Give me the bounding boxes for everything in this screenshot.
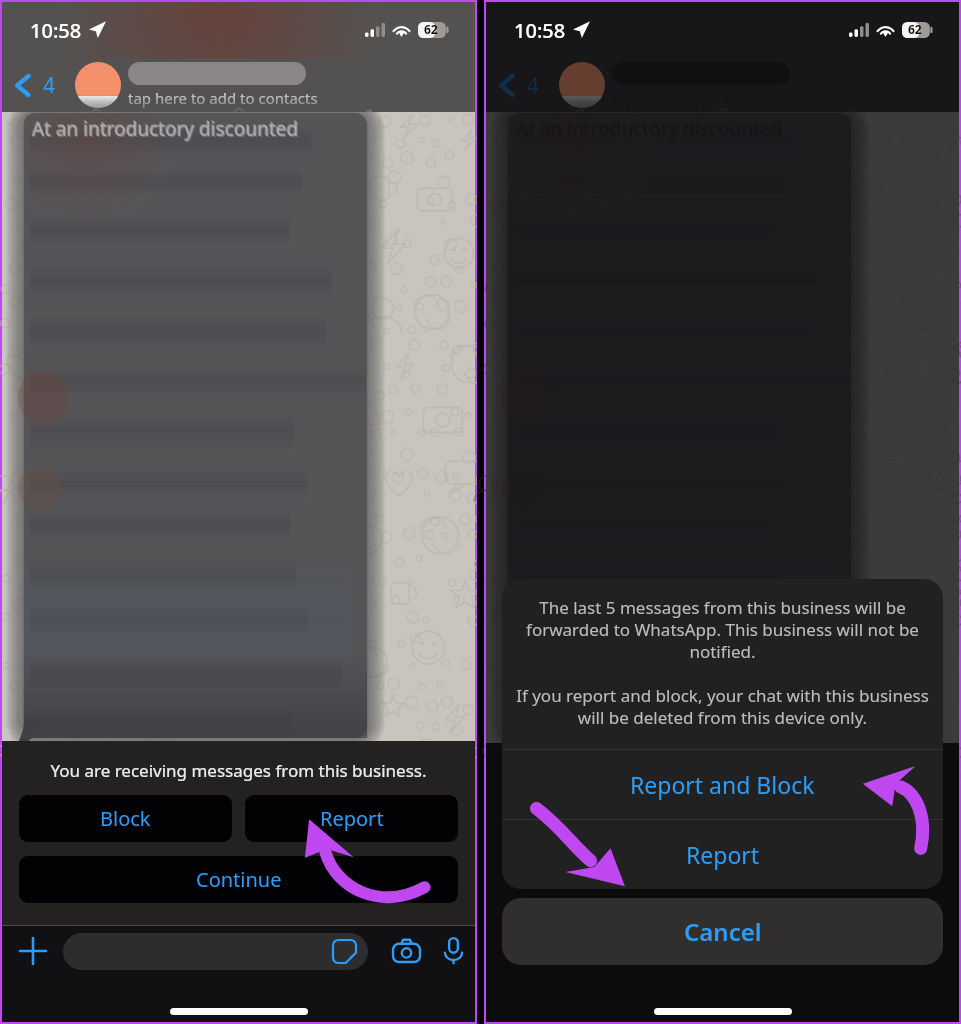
staticText: Continue: [196, 866, 282, 893]
button[interactable]: Back, 4 unread: [10, 65, 60, 106]
button[interactable]: tap here to add to contacts: [128, 62, 461, 108]
staticText: Block: [100, 805, 151, 832]
staticText: 62: [424, 21, 438, 37]
button[interactable]: Back, 4 unread: [494, 65, 544, 106]
staticText: 4: [43, 71, 56, 100]
button[interactable]: Report: [245, 795, 458, 842]
button[interactable]: Cancel: [502, 898, 943, 965]
button[interactable]: [63, 933, 368, 970]
button[interactable]: Continue: [19, 856, 458, 903]
button[interactable]: Report and Block: [502, 750, 943, 819]
staticText: 10:58: [514, 17, 566, 44]
staticText: Cancel: [684, 915, 762, 948]
button[interactable]: Report: [502, 820, 943, 889]
button[interactable]: Profile photo: [559, 62, 605, 108]
staticText: At an introductory discounted: [32, 116, 299, 142]
staticText: tap here to add to contacts: [128, 88, 318, 108]
staticText: 62: [908, 21, 922, 37]
staticText: 10:58: [30, 17, 82, 44]
button[interactable]: tap here to add to contacts: [612, 62, 945, 108]
staticText: At an introductory discounted: [33, 117, 300, 143]
staticText: Report: [686, 839, 760, 870]
staticText: You are receiving messages from this bus…: [19, 759, 458, 782]
staticText: Report and Block: [630, 769, 815, 800]
staticText: 4: [527, 71, 540, 100]
button[interactable]: Voice message: [444, 937, 463, 965]
staticText: Report: [320, 805, 384, 832]
staticText: The last 5 messages from this business w…: [509, 596, 936, 663]
button[interactable]: Camera: [393, 939, 420, 963]
staticText: At an introductory discounted: [31, 115, 298, 141]
button[interactable]: Block: [19, 795, 232, 842]
button[interactable]: Profile photo: [75, 62, 121, 108]
staticText: If you report and block, your chat with …: [509, 684, 936, 729]
button[interactable]: Attach: [16, 934, 50, 968]
